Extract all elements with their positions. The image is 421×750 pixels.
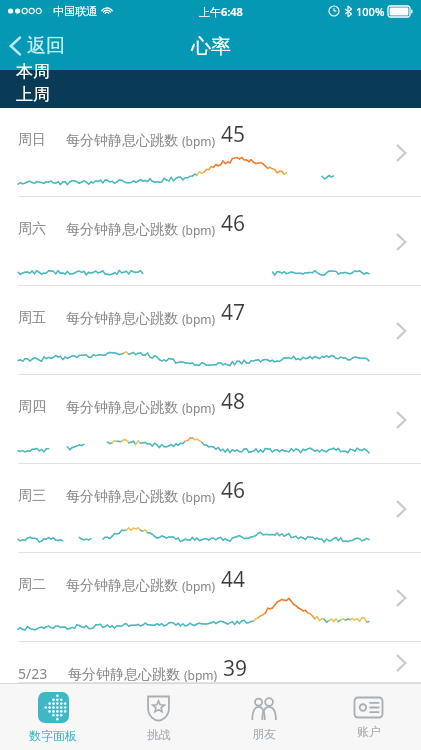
other: 查看详情 (396, 321, 407, 341)
staticText: 每分钟静息心跳数 (66, 486, 182, 505)
staticText: 心率 (191, 34, 231, 59)
staticText: 44 (221, 565, 246, 594)
button[interactable]: 周二 (0, 553, 421, 642)
staticText: 48 (221, 387, 246, 416)
other: 查看详情 (396, 143, 407, 163)
staticText: 46 (221, 209, 246, 238)
staticText: 5/23 (18, 664, 48, 683)
other: 查看详情 (396, 653, 407, 673)
button[interactable]: 周六 (0, 197, 421, 286)
staticText: 每分钟静息心跳数 (66, 575, 182, 594)
staticText: 中国联通 (53, 4, 97, 18)
button[interactable]: 周日 (0, 108, 421, 197)
button[interactable]: 周五 (0, 286, 421, 375)
staticText: 上周 (16, 84, 50, 105)
staticText: (bpm) (182, 133, 216, 149)
staticText: (bpm) (182, 400, 216, 416)
staticText: 周四 (18, 398, 46, 416)
other: 查看详情 (396, 410, 407, 430)
staticText: 周二 (18, 576, 46, 594)
button[interactable]: 挑战 (106, 684, 211, 750)
other: 查看详情 (396, 588, 407, 608)
staticText: 46 (221, 476, 246, 505)
button[interactable]: 数字面板 (0, 684, 106, 750)
staticText: 39 (223, 654, 248, 683)
staticText: 挑战 (147, 727, 171, 742)
button[interactable]: 5/23 (0, 642, 421, 683)
staticText: 数字面板 (29, 728, 77, 743)
button[interactable]: 朋友 (211, 684, 316, 750)
staticText: 每分钟静息心跳数 (66, 219, 182, 238)
staticText: 100% (356, 4, 385, 19)
staticText: 账户 (357, 724, 381, 739)
staticText: (bpm) (184, 667, 218, 683)
button[interactable]: 周四 (0, 375, 421, 464)
staticText: (bpm) (182, 222, 216, 238)
button[interactable]: 账户 (316, 684, 421, 750)
staticText: 周三 (18, 487, 46, 505)
staticText: (bpm) (182, 489, 216, 505)
staticText: 每分钟静息心跳数 (66, 308, 182, 327)
staticText: 周六 (18, 220, 46, 238)
staticText: 上午6:48 (199, 4, 243, 19)
staticText: (bpm) (182, 578, 216, 594)
other: 查看详情 (396, 232, 407, 252)
staticText: (bpm) (182, 311, 216, 327)
staticText: 本周 (16, 61, 50, 82)
staticText: 每分钟静息心跳数 (66, 397, 182, 416)
staticText: 周日 (18, 131, 46, 149)
button[interactable]: 周三 (0, 464, 421, 553)
staticText: 每分钟静息心跳数 (68, 664, 184, 683)
staticText: 每分钟静息心跳数 (66, 130, 182, 149)
button[interactable]: 返回 (0, 28, 75, 64)
staticText: 45 (221, 120, 246, 149)
other: 查看详情 (396, 499, 407, 519)
staticText: 朋友 (252, 726, 276, 741)
staticText: 47 (221, 298, 246, 327)
staticText: 返回 (27, 34, 65, 58)
staticText: 周五 (18, 309, 46, 327)
